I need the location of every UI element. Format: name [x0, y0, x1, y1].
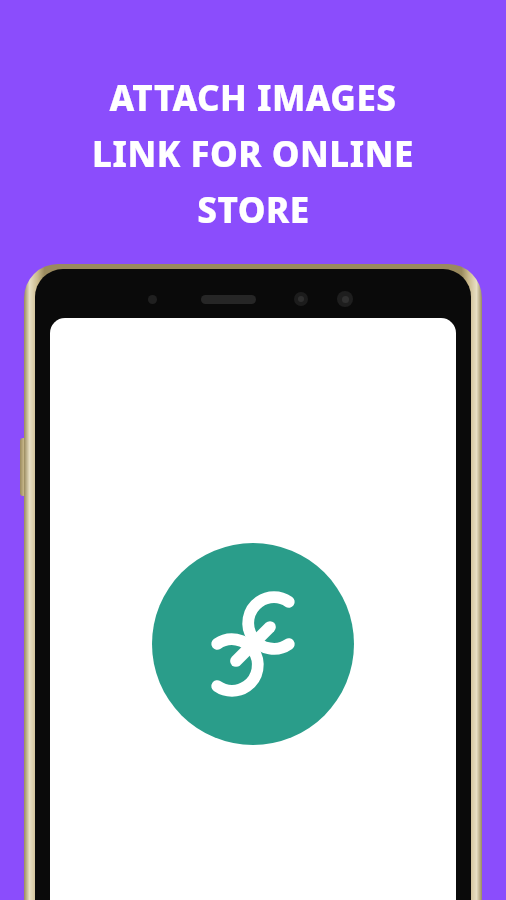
staticText: STORE — [197, 186, 310, 234]
button[interactable]: Attach link — [152, 543, 354, 745]
staticText: ATTACH IMAGES — [109, 74, 397, 122]
staticText: LINK FOR ONLINE — [92, 130, 414, 178]
